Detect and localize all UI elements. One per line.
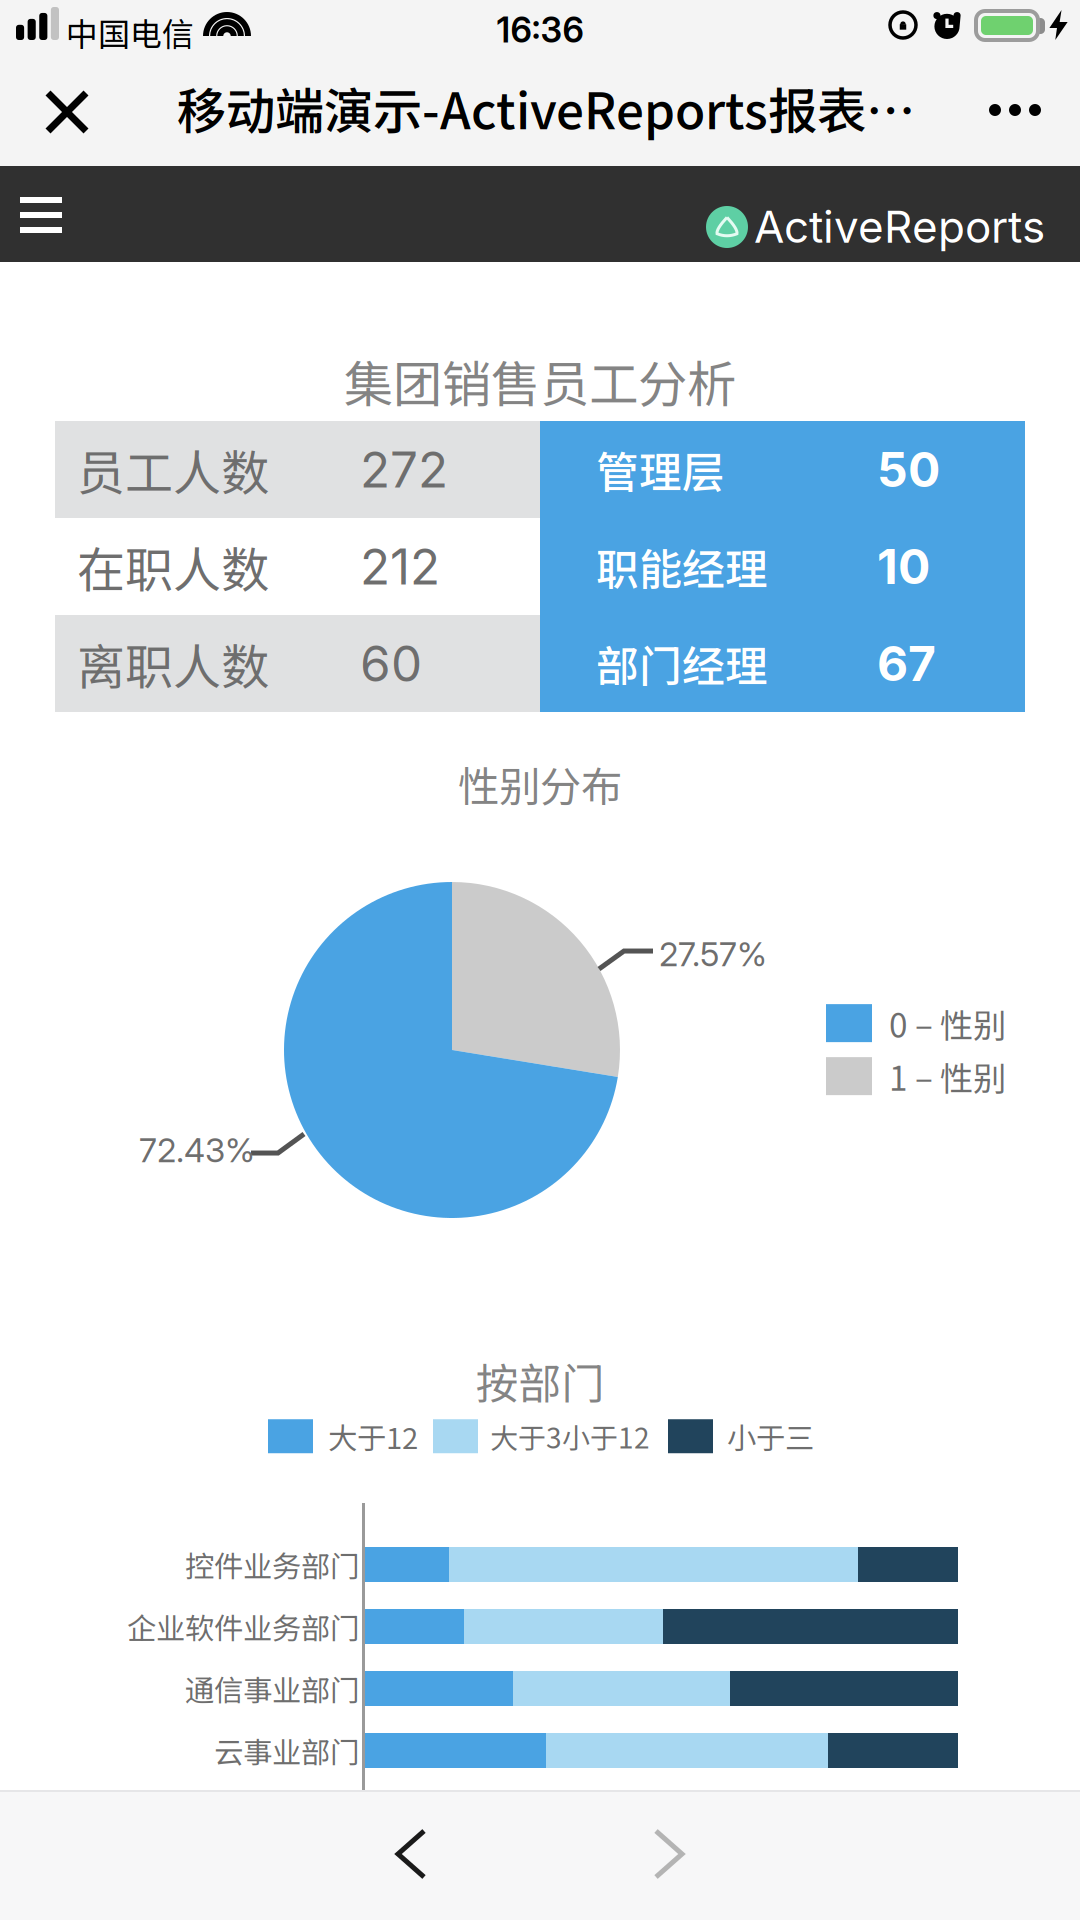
staticText: 小于三 <box>727 1415 814 1457</box>
staticText: ActiveReports <box>754 200 1045 253</box>
staticText: 移动端演示-ActiveReports报表… <box>177 72 915 143</box>
staticText: 1 – 性别 <box>889 1052 1006 1100</box>
staticText: 60 <box>360 634 422 693</box>
staticText: 大于12 <box>328 1415 418 1457</box>
button[interactable]: Forward <box>622 1797 716 1911</box>
staticText: 企业软件业务部门 <box>127 1605 359 1648</box>
staticText: 在职人数 <box>77 532 269 601</box>
button[interactable]: More <box>969 84 1061 136</box>
staticText: 通信事业部门 <box>185 1667 359 1710</box>
staticText: 10 <box>877 537 930 596</box>
staticText: 性别分布 <box>458 754 622 814</box>
staticText: 0 – 性别 <box>889 999 1006 1047</box>
staticText: 16:36 <box>496 9 583 51</box>
button[interactable]: Close <box>28 73 106 151</box>
staticText: 50 <box>877 440 940 499</box>
staticText: 管理层 <box>596 439 725 500</box>
staticText: 部门经理 <box>596 633 768 694</box>
staticText: 离职人数 <box>77 629 269 698</box>
staticText: 集团销售员工分析 <box>344 345 736 416</box>
staticText: 控件业务部门 <box>185 1543 359 1586</box>
staticText: 职能经理 <box>596 536 768 597</box>
staticText: 67 <box>877 634 936 693</box>
staticText: 员工人数 <box>77 435 269 504</box>
staticText: 大于3小于12 <box>490 1416 650 1456</box>
staticText: 云事业部门 <box>214 1729 359 1772</box>
staticText: 按部门 <box>475 1350 604 1412</box>
staticText: 27.57% <box>659 934 767 974</box>
staticText: 中国电信 <box>66 9 194 55</box>
staticText: 212 <box>360 537 440 596</box>
button[interactable]: Menu <box>0 170 82 260</box>
button[interactable]: Back <box>364 1797 458 1911</box>
staticText: 72.43% <box>139 1130 255 1170</box>
staticText: 272 <box>360 440 448 499</box>
